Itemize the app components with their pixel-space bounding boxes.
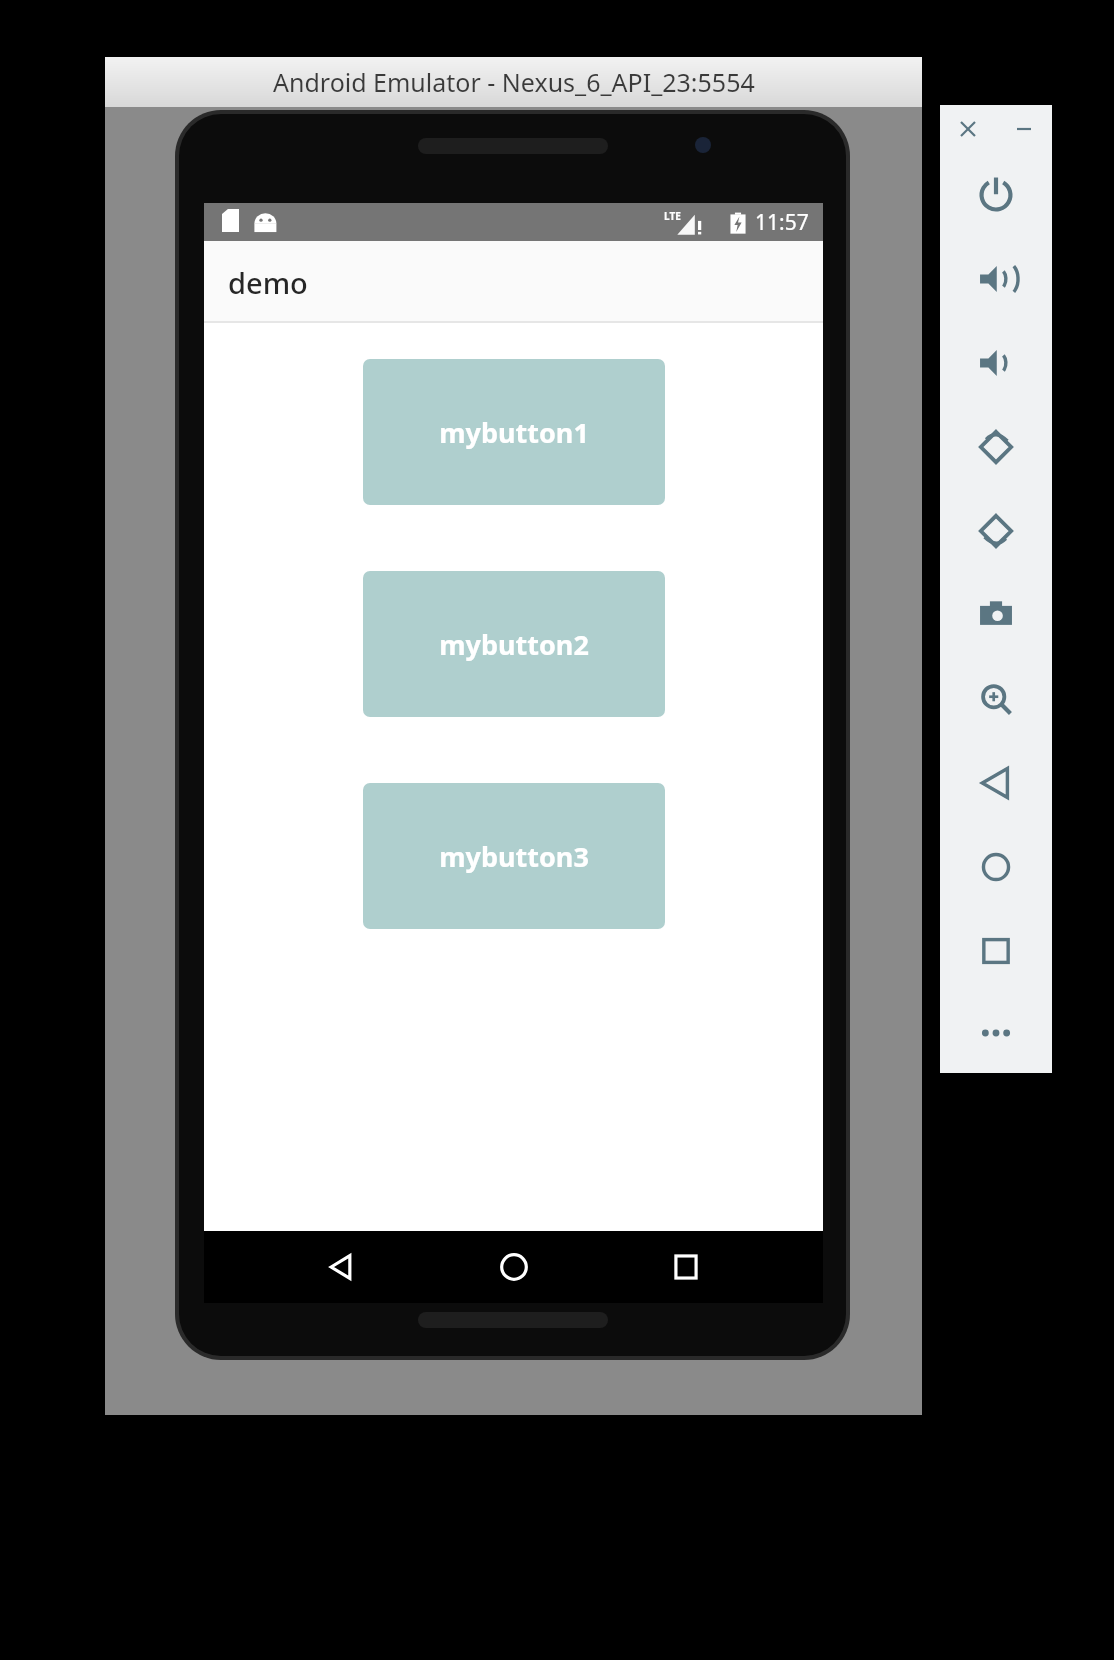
- staticText: mybutton2: [439, 626, 589, 663]
- staticText: LTE: [664, 209, 681, 223]
- button[interactable]: Home: [478, 1231, 550, 1303]
- button[interactable]: Rotate left: [940, 405, 1052, 489]
- button[interactable]: More: [940, 993, 1052, 1073]
- button[interactable]: Screenshot: [940, 573, 1052, 657]
- button[interactable]: Home: [940, 825, 1052, 909]
- button[interactable]: mybutton1: [363, 359, 665, 505]
- button[interactable]: Close: [953, 114, 983, 144]
- staticText: 11:57: [755, 208, 809, 237]
- button[interactable]: Power: [940, 153, 1052, 237]
- button[interactable]: Volume up: [940, 237, 1052, 321]
- button[interactable]: Overview: [940, 909, 1052, 993]
- staticText: demo: [228, 263, 308, 302]
- button[interactable]: Back: [305, 1231, 377, 1303]
- button[interactable]: Zoom: [940, 657, 1052, 741]
- button[interactable]: Back: [940, 741, 1052, 825]
- staticText: mybutton1: [439, 414, 589, 451]
- button[interactable]: Volume down: [940, 321, 1052, 405]
- staticText: mybutton3: [439, 838, 589, 875]
- button[interactable]: mybutton3: [363, 783, 665, 929]
- button[interactable]: Rotate right: [940, 489, 1052, 573]
- button[interactable]: Minimize: [1009, 114, 1039, 144]
- button[interactable]: Recent apps: [650, 1231, 722, 1303]
- button[interactable]: mybutton2: [363, 571, 665, 717]
- staticText: Android Emulator - Nexus_6_API_23:5554: [273, 65, 755, 99]
